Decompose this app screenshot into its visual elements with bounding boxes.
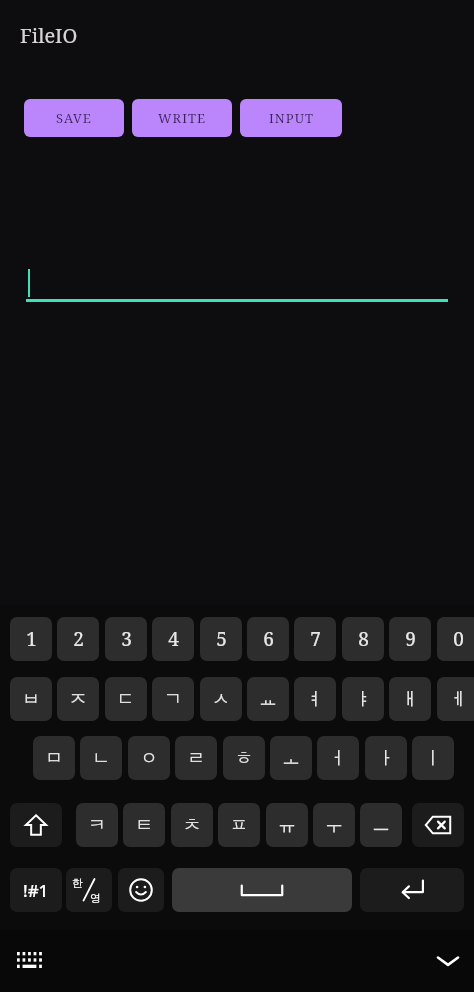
staticText: ㅂ [22,688,40,711]
button[interactable]: 7 [294,617,336,661]
button[interactable]: ㅡ [360,803,402,847]
button[interactable]: 0 [437,617,474,661]
staticText: ㅡ [372,814,390,837]
button[interactable]: ㅔ [437,677,474,721]
button[interactable]: ㅣ [412,736,454,780]
staticText: ㅌ [135,814,153,837]
staticText: ㅇ [140,747,158,770]
staticText: 5 [216,626,227,652]
staticText: 3 [121,626,132,652]
staticText: 9 [405,626,416,652]
staticText: FileIO [20,22,78,49]
staticText: !#1 [23,879,49,902]
staticText: ㅣ [424,747,442,770]
button[interactable]: Hide keyboard [424,937,472,985]
button[interactable]: ㄹ [175,736,217,780]
button[interactable]: SAVE [24,99,124,137]
button[interactable]: ㅍ [218,803,260,847]
staticText: 4 [168,626,179,652]
button[interactable]: 1 [10,617,52,661]
button[interactable]: Space [172,868,352,912]
staticText: ㅈ [69,688,87,711]
button[interactable]: ㅌ [123,803,165,847]
button[interactable]: 2 [57,617,99,661]
button[interactable]: ㄱ [152,677,194,721]
staticText: ㅋ [88,814,106,837]
button[interactable]: ㅓ [317,736,359,780]
button[interactable]: ㅊ [171,803,213,847]
button[interactable]: ㅏ [365,736,407,780]
button[interactable]: !#1 [10,868,62,912]
button[interactable] [26,262,448,302]
staticText: ㅐ [401,688,419,711]
button[interactable]: 8 [342,617,384,661]
button[interactable]: INPUT [240,99,342,137]
staticText: 8 [358,626,369,652]
button[interactable]: ㅇ [128,736,170,780]
button[interactable]: ㅗ [270,736,312,780]
staticText: ㅊ [183,814,201,837]
staticText: ㅑ [354,688,372,711]
button[interactable]: 9 [389,617,431,661]
staticText: ㄹ [187,747,205,770]
staticText: ㄴ [92,747,110,770]
staticText: ㅅ [212,688,230,711]
button[interactable]: ㅅ [200,677,242,721]
staticText: ㅔ [449,688,467,711]
staticText: 1 [26,626,37,652]
staticText: 7 [310,626,321,652]
button[interactable]: ㅎ [223,736,265,780]
staticText: ㄱ [164,688,182,711]
button[interactable]: ㅂ [10,677,52,721]
staticText: 6 [263,626,274,652]
button[interactable]: ㅕ [294,677,336,721]
staticText: ㅗ [282,747,300,770]
button[interactable]: ㅐ [389,677,431,721]
staticText: ㅜ [325,814,343,837]
button[interactable]: ㄴ [80,736,122,780]
staticText: ㅍ [230,814,248,837]
staticText: ㅠ [278,814,296,837]
staticText: ㅏ [377,747,395,770]
staticText: WRITE [158,109,206,127]
button[interactable]: ㅛ [247,677,289,721]
button[interactable]: Shift [10,803,62,847]
button[interactable]: 3 [105,617,147,661]
button[interactable]: ㅑ [342,677,384,721]
staticText: ㅎ [235,747,253,770]
button[interactable]: ㅋ [76,803,118,847]
button[interactable]: Emoji [118,868,164,912]
staticText: ㅕ [306,688,324,711]
button[interactable]: 5 [200,617,242,661]
button[interactable]: Korean English toggle [66,868,112,912]
button[interactable]: Backspace [412,803,464,847]
button[interactable]: ㅜ [313,803,355,847]
staticText: 한 [72,876,83,890]
staticText: ㅁ [45,747,63,770]
button[interactable]: Enter [360,868,464,912]
staticText: SAVE [56,109,92,127]
staticText: ㅓ [329,747,347,770]
button[interactable]: ㅠ [266,803,308,847]
staticText: INPUT [269,109,314,127]
button[interactable]: Change keyboard [6,937,54,985]
button[interactable]: WRITE [132,99,232,137]
button[interactable]: ㅈ [57,677,99,721]
button[interactable]: 4 [152,617,194,661]
button[interactable]: ㅁ [33,736,75,780]
staticText: ㅛ [259,688,277,711]
staticText: ㄷ [117,688,135,711]
staticText: 2 [73,626,84,652]
staticText: 영 [90,891,101,905]
button[interactable]: 6 [247,617,289,661]
staticText: 0 [453,626,464,652]
button[interactable]: ㄷ [105,677,147,721]
